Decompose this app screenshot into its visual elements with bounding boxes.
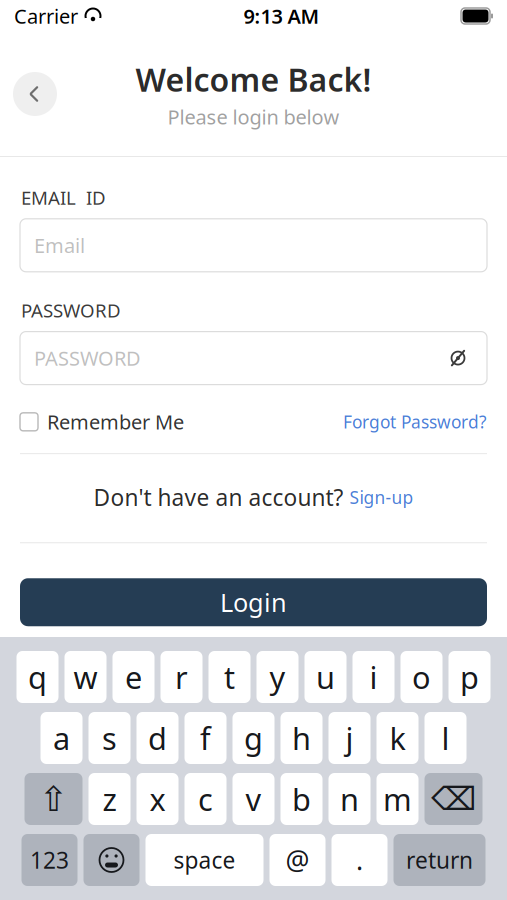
button[interactable]: Remember Me xyxy=(20,409,184,435)
staticText: d xyxy=(148,718,167,758)
staticText: i xyxy=(369,657,377,697)
staticText: Login xyxy=(220,585,287,619)
button[interactable]: f xyxy=(184,712,226,764)
button[interactable]: e xyxy=(112,651,154,703)
button[interactable]: Sign-up xyxy=(349,486,413,509)
staticText: Sign-up xyxy=(349,486,413,509)
staticText: l xyxy=(441,718,449,758)
staticText: 123 xyxy=(30,845,69,875)
staticText: t xyxy=(224,657,235,697)
button[interactable]: b xyxy=(280,773,322,825)
staticText: Please login below xyxy=(167,103,339,130)
button[interactable]: p xyxy=(448,651,490,703)
button[interactable]: @ xyxy=(269,834,325,886)
staticText: h xyxy=(292,718,311,758)
staticText: p xyxy=(460,657,479,697)
button[interactable]: v xyxy=(232,773,274,825)
staticText: space xyxy=(173,845,235,875)
button[interactable]: j xyxy=(328,712,370,764)
staticText: q xyxy=(28,657,47,697)
button[interactable]: n xyxy=(328,773,370,825)
button[interactable]: w xyxy=(64,651,106,703)
staticText: g xyxy=(244,718,263,758)
staticText: . xyxy=(356,842,363,878)
staticText: r xyxy=(175,657,188,697)
button[interactable]: h xyxy=(280,712,322,764)
button[interactable]: u xyxy=(304,651,346,703)
button[interactable]: y xyxy=(256,651,298,703)
button[interactable]: space xyxy=(145,834,263,886)
button[interactable]: Forgot Password? xyxy=(343,410,487,433)
staticText: k xyxy=(389,718,405,758)
staticText: x xyxy=(149,779,165,819)
button[interactable]: q xyxy=(16,651,58,703)
staticText: n xyxy=(340,779,359,819)
button[interactable]: Emoji xyxy=(83,834,139,886)
staticText: Carrier xyxy=(14,3,78,29)
button[interactable]: a xyxy=(40,712,82,764)
staticText: u xyxy=(316,657,335,697)
staticText: Email xyxy=(34,232,85,259)
staticText: @ xyxy=(285,842,309,878)
staticText: 9:13 AM xyxy=(243,3,319,29)
staticText: ⌫ xyxy=(431,781,476,817)
staticText: b xyxy=(292,779,311,819)
staticText: Forgot Password? xyxy=(343,410,487,433)
staticText: c xyxy=(198,779,213,819)
staticText: v xyxy=(245,779,261,819)
staticText: s xyxy=(102,718,117,758)
button[interactable]: return xyxy=(393,834,485,886)
button[interactable]: g xyxy=(232,712,274,764)
staticText: y xyxy=(269,657,285,697)
staticText: z xyxy=(102,779,116,819)
button[interactable]: r xyxy=(160,651,202,703)
button[interactable]: t xyxy=(208,651,250,703)
staticText: Remember Me xyxy=(47,409,184,435)
staticText: ⇧ xyxy=(39,779,68,819)
button[interactable]: Shift xyxy=(24,773,82,825)
staticText: EMAIL ID xyxy=(21,185,106,210)
button[interactable]: . xyxy=(331,834,387,886)
button[interactable]: i xyxy=(352,651,394,703)
staticText: Don't have an account? xyxy=(93,482,343,512)
button[interactable]: c xyxy=(184,773,226,825)
button[interactable]: Login xyxy=(20,578,487,626)
button[interactable]: z xyxy=(88,773,130,825)
staticText: PASSWORD xyxy=(34,345,141,371)
button[interactable]: l xyxy=(424,712,466,764)
button[interactable]: 123 xyxy=(21,834,77,886)
staticText: o xyxy=(412,657,431,697)
staticText: j xyxy=(345,718,353,758)
button[interactable]: s xyxy=(88,712,130,764)
button[interactable]: Back xyxy=(13,72,57,116)
staticText: e xyxy=(125,657,142,697)
staticText: a xyxy=(53,718,70,758)
staticText: m xyxy=(383,779,412,819)
staticText: f xyxy=(200,718,211,758)
staticText: w xyxy=(73,657,97,697)
button[interactable]: m xyxy=(376,773,418,825)
button[interactable]: k xyxy=(376,712,418,764)
staticText: return xyxy=(406,845,473,875)
button[interactable]: Delete xyxy=(424,773,482,825)
button[interactable]: o xyxy=(400,651,442,703)
button[interactable]: x xyxy=(136,773,178,825)
button[interactable]: d xyxy=(136,712,178,764)
button[interactable]: Show password xyxy=(443,343,473,373)
staticText: Welcome Back! xyxy=(135,58,371,100)
staticText: PASSWORD xyxy=(21,298,121,323)
